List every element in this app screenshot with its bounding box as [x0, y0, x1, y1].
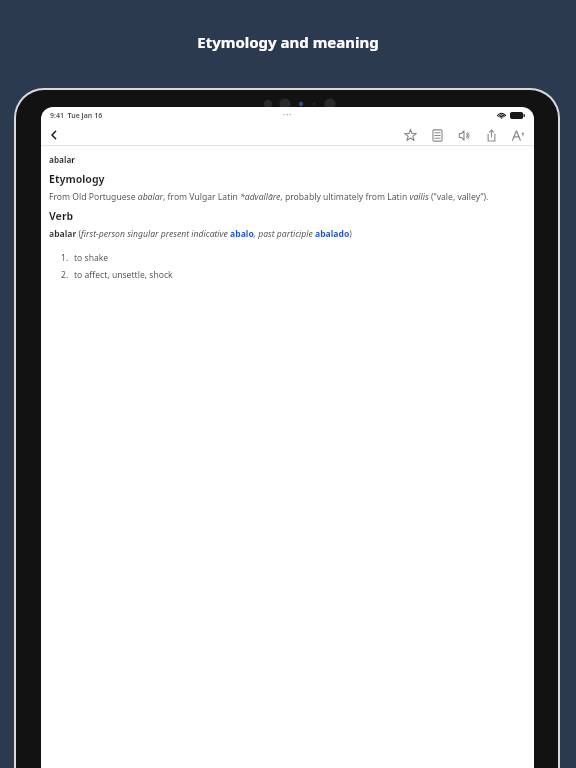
button[interactable]: Bookmark — [400, 125, 420, 145]
button[interactable]: Read aloud — [454, 125, 474, 145]
staticText: Verb — [49, 209, 74, 223]
staticText: to affect, unsettle, shock — [74, 269, 173, 281]
staticText: 2. — [61, 269, 69, 281]
staticText: 1. — [61, 252, 69, 264]
button[interactable]: Back — [45, 126, 63, 144]
button[interactable]: Table of contents — [427, 125, 447, 145]
staticText: Etymology and meaning — [197, 32, 379, 52]
staticText: 9:41 Tue Jan 16 — [50, 111, 103, 121]
staticText: From Old Portuguese abalar, from Vulgar … — [49, 191, 489, 203]
staticText: • • • — [283, 112, 292, 119]
button[interactable]: Text size — [508, 125, 528, 145]
staticText: abalar (first-person singular present in… — [49, 228, 352, 240]
staticText: abalar — [49, 154, 75, 165]
button[interactable]: Share — [481, 125, 501, 145]
staticText: Etymology — [49, 172, 105, 186]
staticText: to shake — [74, 252, 109, 264]
